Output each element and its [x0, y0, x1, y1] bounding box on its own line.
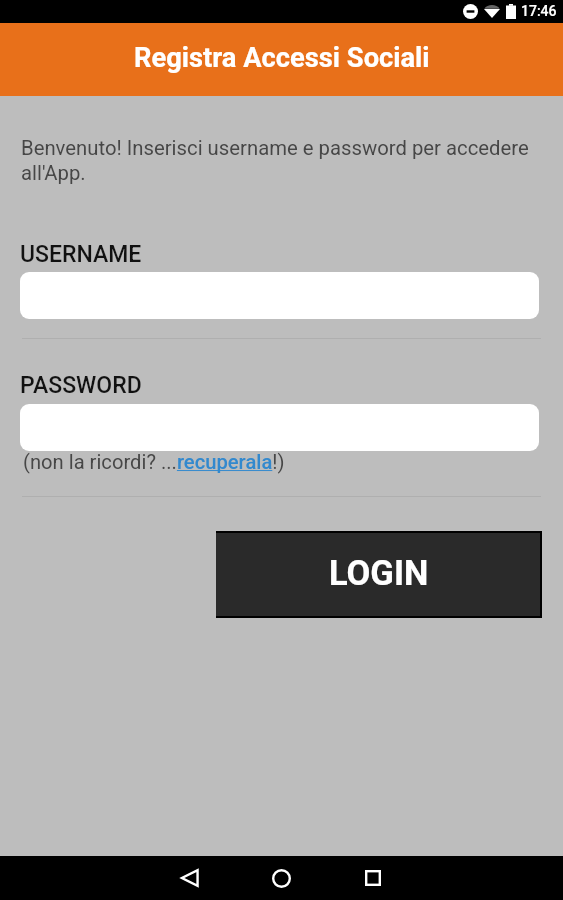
staticText: USERNAME — [20, 241, 142, 268]
button[interactable]: Back — [168, 856, 212, 900]
button[interactable]: Home — [259, 856, 303, 900]
staticText: PASSWORD — [20, 372, 142, 399]
staticText: (non la ricordi? ...recuperala!) — [23, 450, 285, 474]
staticText: 17:46 — [521, 3, 557, 19]
staticText: Benvenuto! Inserisci username e password… — [21, 136, 540, 185]
button[interactable]: Password input — [20, 404, 539, 451]
button[interactable]: (non la ricordi? ...recuperala!) — [23, 450, 285, 474]
button[interactable]: Recent apps — [351, 856, 395, 900]
button[interactable]: Username input — [20, 272, 539, 319]
button[interactable]: LOGIN — [216, 531, 542, 618]
staticText: Registra Accessi Sociali — [134, 42, 430, 74]
staticText: LOGIN — [329, 553, 429, 593]
